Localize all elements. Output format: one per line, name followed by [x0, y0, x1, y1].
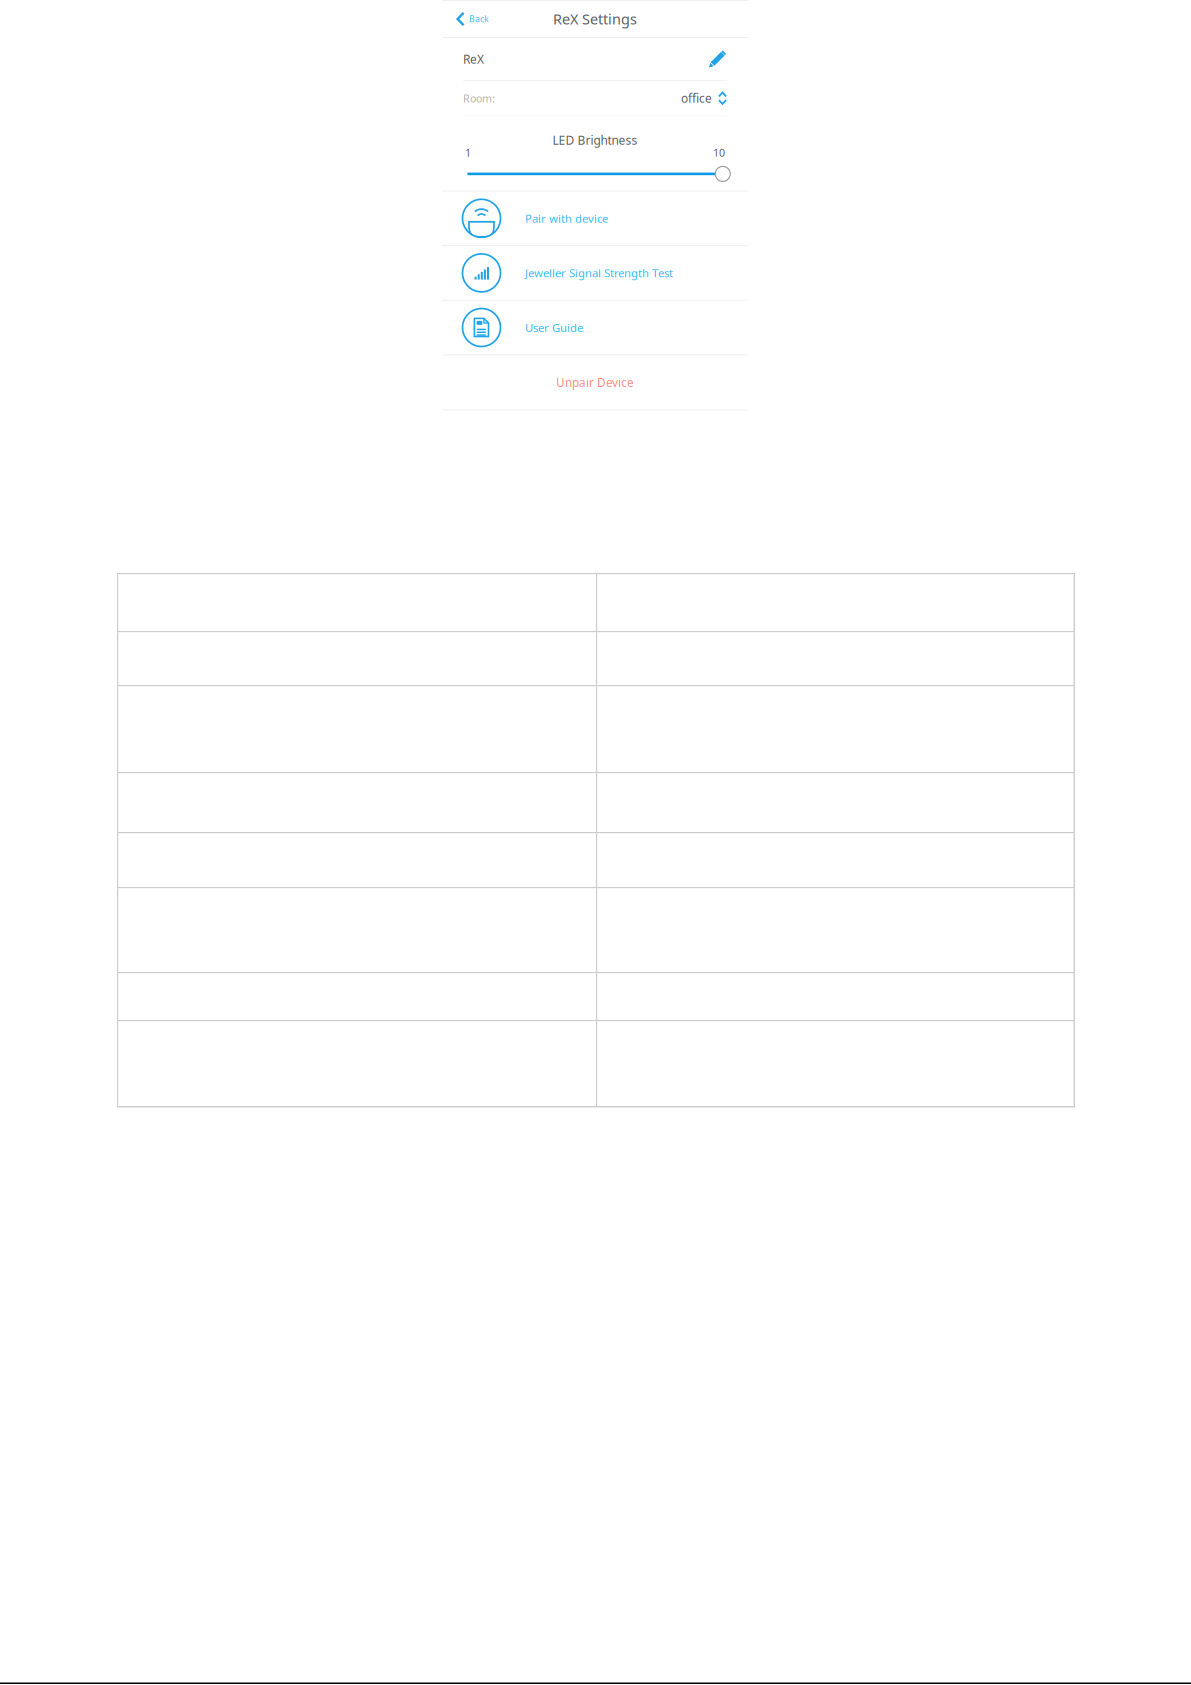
staticText: 1: [465, 145, 471, 160]
staticText: Room:: [463, 91, 495, 105]
staticText: ReX Settings: [553, 9, 637, 29]
staticText: Unpair Device: [556, 374, 634, 390]
button[interactable]: Jeweller Signal Strength Test: [442, 246, 748, 300]
button[interactable]: Unpair Device: [442, 355, 748, 409]
staticText: Pair with device: [525, 211, 608, 226]
staticText: 10: [713, 145, 725, 160]
staticText: ReX: [463, 51, 484, 67]
staticText: Back: [469, 13, 489, 25]
button[interactable]: Rename device: [708, 49, 727, 68]
button[interactable]: User Guide: [442, 301, 748, 354]
button[interactable]: Back: [452, 1, 493, 37]
staticText: office: [681, 90, 712, 106]
staticText: Jeweller Signal Strength Test: [525, 265, 673, 281]
button[interactable]: Room:: [442, 81, 748, 115]
button[interactable]: LED brightness slider: [442, 163, 748, 185]
button[interactable]: Pair with device: [442, 191, 748, 245]
staticText: User Guide: [525, 320, 583, 335]
staticText: LED Brightness: [552, 132, 637, 148]
